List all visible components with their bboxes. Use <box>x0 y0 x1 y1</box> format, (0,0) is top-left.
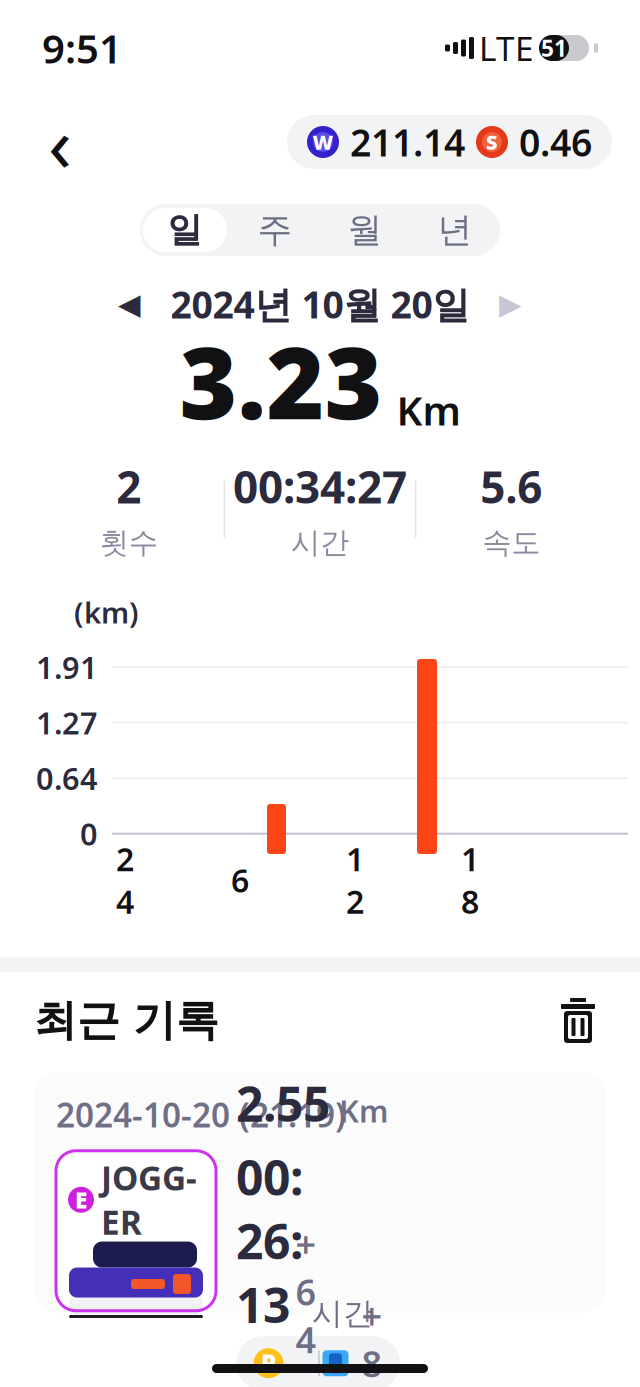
staticText: 12 <box>346 837 364 922</box>
staticText: Km <box>339 1090 388 1131</box>
button[interactable]: Delete records <box>550 992 606 1048</box>
staticText: 1.27 <box>36 702 98 743</box>
staticText: 9:51 <box>42 21 122 74</box>
staticText: 18 <box>461 837 479 922</box>
staticText: 최근 기록 <box>34 994 219 1047</box>
staticText: S <box>486 129 498 155</box>
staticText: 5.6 <box>480 457 542 516</box>
staticText: 3.23 <box>179 315 382 446</box>
staticText: ▶ <box>499 287 522 321</box>
button[interactable]: Next day <box>483 277 537 331</box>
button[interactable]: 일 <box>140 204 230 256</box>
staticText: ◀ <box>118 287 141 321</box>
staticText: 시간 <box>312 1295 374 1332</box>
button[interactable]: W <box>287 115 612 169</box>
staticText: Km <box>396 383 460 436</box>
button[interactable]: Back <box>28 110 92 174</box>
button[interactable]: 주 <box>230 204 320 256</box>
staticText: E <box>75 1185 87 1215</box>
staticText: JOGGER <box>101 1155 197 1244</box>
button[interactable]: Previous day <box>102 277 156 331</box>
staticText: 년 <box>437 209 472 251</box>
staticText: 속도 <box>482 525 540 561</box>
staticText: 횟수 <box>100 525 158 561</box>
button[interactable]: 월 <box>320 204 410 256</box>
staticText: P <box>261 1347 276 1379</box>
staticText: 2 <box>116 457 141 516</box>
staticText: 2024년 10월 20일 <box>170 279 469 329</box>
staticText: 00:26:13 <box>236 1145 303 1336</box>
staticText: LTE <box>479 26 534 70</box>
staticText: 211.14 <box>350 117 465 167</box>
staticText: 월 <box>347 209 382 251</box>
staticText: 24 <box>116 837 134 922</box>
button[interactable]: 년 <box>410 204 500 256</box>
staticText: 시간 <box>291 525 349 561</box>
staticText: 0.64 <box>36 758 98 798</box>
staticText: 일 <box>167 209 202 251</box>
button[interactable]: 2024-10-20 (21:19) <box>34 1072 606 1312</box>
staticText: 0 <box>80 813 98 854</box>
staticText: 주 <box>257 209 292 251</box>
staticText: W <box>312 129 333 155</box>
staticText: 1.91 <box>36 647 98 687</box>
staticText: (km) <box>74 592 139 631</box>
staticText: 2.55 <box>236 1071 330 1135</box>
staticText: 51 <box>541 33 567 63</box>
staticText: 2024-10-20 (21:19) <box>56 1092 346 1137</box>
staticText: 6 <box>231 859 249 901</box>
staticText: 0.46 <box>519 117 592 167</box>
staticText: 00:34:27 <box>233 457 407 516</box>
staticText: +64.61 <box>295 1220 316 1387</box>
staticText: ‹ <box>48 91 72 193</box>
staticText: +88 <box>361 1291 382 1387</box>
